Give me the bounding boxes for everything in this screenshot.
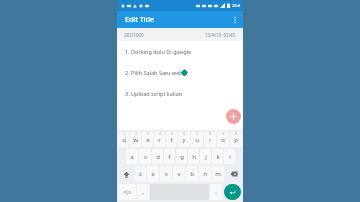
staticText: Edit Title: [125, 15, 155, 25]
staticText: 5: [171, 132, 173, 136]
button[interactable]: n: [199, 166, 211, 182]
staticText: q: [122, 136, 126, 144]
staticText: o: [221, 136, 225, 144]
button[interactable]: 7: [191, 132, 203, 147]
staticText: 2. Pilih Salah Satu web: [125, 69, 183, 76]
staticText: l: [229, 153, 231, 161]
staticText: h: [192, 153, 196, 161]
button[interactable]: k: [212, 149, 223, 164]
staticText: y: [182, 136, 186, 144]
staticText: b: [190, 170, 194, 178]
button[interactable]: l: [224, 149, 235, 164]
staticText: n: [203, 170, 207, 178]
staticText: 2: [135, 132, 137, 136]
staticText: 3. Upload script kalian: [125, 90, 183, 97]
button[interactable]: 6: [178, 132, 190, 147]
button[interactable]: Backspace: [225, 166, 242, 182]
button[interactable]: 0: [230, 132, 242, 147]
staticText: 282/1000: [124, 32, 144, 38]
staticText: a: [130, 153, 134, 161]
staticText: 4: [159, 132, 161, 136]
button[interactable]: ?123: [118, 184, 136, 200]
button[interactable]: z: [135, 166, 146, 182]
staticText: k: [216, 153, 220, 161]
staticText: ,: [142, 188, 144, 196]
button[interactable]: 3: [142, 132, 153, 147]
staticText: ?123: [123, 190, 131, 195]
staticText: w: [133, 136, 138, 144]
staticText: d: [156, 153, 160, 161]
staticText: .: [215, 188, 217, 196]
button[interactable]: m: [212, 166, 224, 182]
staticText: 13/4/18 02:45: [205, 32, 236, 38]
staticText: v: [177, 170, 181, 178]
staticText: r: [158, 136, 161, 144]
button[interactable]: 2: [130, 132, 141, 147]
button[interactable]: 8: [204, 132, 216, 147]
button[interactable]: d: [152, 149, 163, 164]
staticText: s: [144, 153, 147, 161]
button[interactable]: f: [164, 149, 175, 164]
staticText: 9: [222, 132, 224, 136]
button[interactable]: More options: [227, 12, 243, 28]
staticText: z: [139, 170, 142, 178]
staticText: f: [168, 153, 171, 161]
button[interactable]: c: [160, 166, 172, 182]
staticText: 3: [147, 132, 149, 136]
button[interactable]: s: [139, 149, 151, 164]
staticText: 0: [235, 132, 237, 136]
button[interactable]: ,: [137, 184, 149, 200]
staticText: e: [146, 136, 150, 144]
staticText: 1: [123, 132, 125, 136]
staticText: 6: [183, 132, 185, 136]
button[interactable]: Enter: [224, 184, 241, 200]
staticText: p: [234, 136, 238, 144]
staticText: m: [215, 170, 221, 178]
staticText: t: [170, 136, 173, 144]
button[interactable]: x: [147, 166, 159, 182]
staticText: c: [165, 170, 168, 178]
button[interactable]: .: [210, 184, 222, 200]
button[interactable]: a: [126, 149, 138, 164]
button[interactable]: Add: [226, 109, 241, 124]
staticText: u: [195, 136, 199, 144]
staticText: i: [209, 136, 211, 144]
button[interactable]: 4: [154, 132, 165, 147]
staticText: g: [180, 153, 184, 161]
button[interactable]: v: [173, 166, 185, 182]
button[interactable]: b: [186, 166, 198, 182]
button[interactable]: 5: [166, 132, 177, 147]
staticText: j: [205, 153, 207, 161]
button[interactable]: 9: [217, 132, 229, 147]
staticText: 20:4: [232, 3, 240, 8]
button[interactable]: 1: [118, 132, 129, 147]
button[interactable]: g: [176, 149, 187, 164]
staticText: 1. Dorking dulu Di google: [125, 48, 192, 55]
button[interactable]: Shift: [118, 166, 134, 182]
button[interactable]: j: [200, 149, 211, 164]
staticText: x: [151, 170, 155, 178]
staticText: 7: [196, 132, 198, 136]
button[interactable]: h: [188, 149, 199, 164]
staticText: 8: [209, 132, 211, 136]
